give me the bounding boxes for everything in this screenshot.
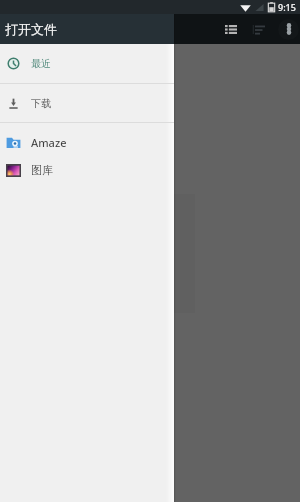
staticText: Amaze — [31, 135, 67, 150]
button[interactable]: More options — [277, 14, 300, 44]
button[interactable]: Amaze — [0, 128, 174, 156]
staticText: 最近 — [31, 57, 51, 70]
staticText: 图库 — [31, 163, 53, 177]
button[interactable]: Sort — [246, 14, 273, 44]
staticText: 9:15 — [278, 1, 296, 13]
staticText: 打开文件 — [5, 21, 57, 37]
button[interactable]: Grid view — [217, 14, 244, 44]
button[interactable]: 下载 — [0, 84, 174, 122]
button[interactable]: 最近 — [0, 44, 174, 83]
staticText: 9:15 — [278, 1, 296, 13]
button[interactable]: 图库 — [0, 156, 174, 184]
staticText: 下载 — [31, 97, 51, 110]
